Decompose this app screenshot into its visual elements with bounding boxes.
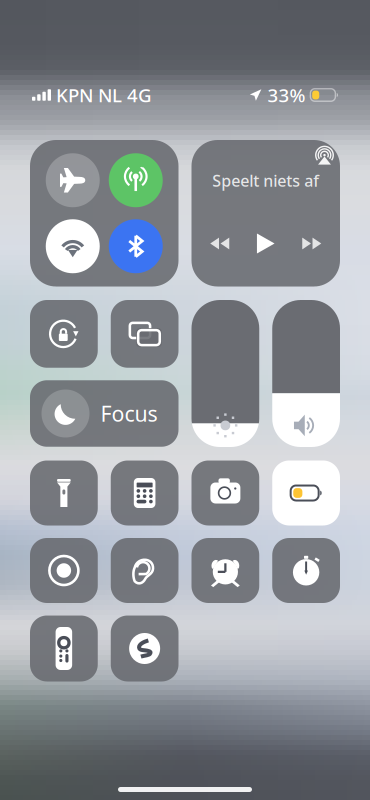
button[interactable] (111, 615, 179, 681)
staticText: Speelt niets af (212, 170, 319, 191)
button[interactable] (30, 615, 98, 681)
button[interactable] (272, 460, 340, 525)
button[interactable] (272, 538, 340, 603)
button[interactable] (111, 538, 179, 603)
button[interactable]: Cellular Data (109, 153, 163, 207)
button[interactable]: Play (247, 228, 285, 258)
staticText: Focus (100, 399, 157, 428)
button[interactable] (191, 300, 259, 447)
button[interactable]: Focus (30, 380, 178, 447)
button[interactable]: Fast forward (293, 228, 331, 258)
button[interactable]: Wi-Fi (46, 219, 100, 273)
button[interactable]: Bluetooth (109, 219, 163, 273)
button[interactable] (30, 460, 98, 525)
button[interactable] (30, 538, 98, 603)
button[interactable]: Airplane Mode (46, 153, 100, 207)
button[interactable]: Rewind (201, 228, 239, 258)
button[interactable] (272, 300, 340, 447)
staticText: 33% (267, 83, 305, 107)
button[interactable] (111, 460, 179, 525)
button[interactable] (191, 538, 259, 603)
button[interactable] (30, 300, 98, 368)
button[interactable] (191, 460, 259, 525)
button[interactable]: AirPlay (309, 140, 340, 171)
button[interactable] (111, 300, 179, 368)
staticText: KPN NL 4G (56, 83, 152, 107)
